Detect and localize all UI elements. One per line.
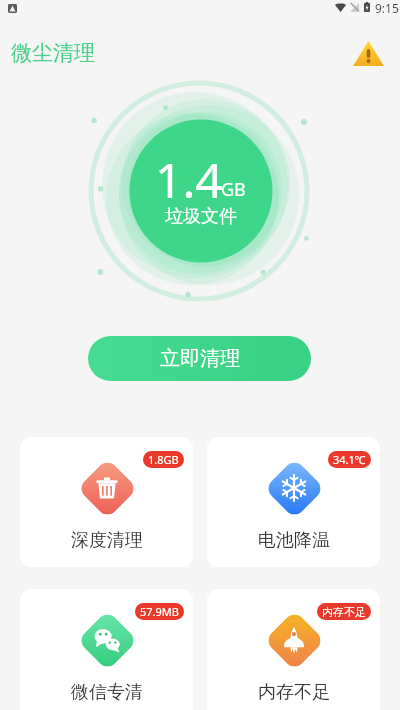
staticText: 1.4 — [155, 147, 223, 212]
staticText: GB — [221, 177, 246, 202]
staticText: 内存不足 — [322, 605, 366, 619]
staticText: 微信专清 — [71, 681, 143, 704]
button[interactable]: 深度清理 — [20, 437, 193, 567]
staticText: 57.9MB — [140, 604, 179, 619]
staticText: 立即清理 — [160, 346, 240, 371]
staticText: 深度清理 — [71, 529, 143, 552]
button[interactable]: Warning — [350, 36, 386, 72]
staticText: 9:15 — [375, 0, 399, 16]
staticText: 内存不足 — [258, 681, 330, 704]
button[interactable]: 立即清理 — [88, 336, 311, 381]
staticText: 电池降温 — [258, 529, 330, 552]
staticText: 34.1℃ — [333, 452, 366, 467]
staticText: 垃圾文件 — [165, 205, 237, 228]
button[interactable]: 内存不足 — [207, 589, 380, 710]
staticText: 微尘清理 — [11, 40, 95, 66]
staticText: 1.8GB — [148, 452, 179, 467]
button[interactable]: 微信专清 — [20, 589, 193, 710]
button[interactable]: 电池降温 — [207, 437, 380, 567]
